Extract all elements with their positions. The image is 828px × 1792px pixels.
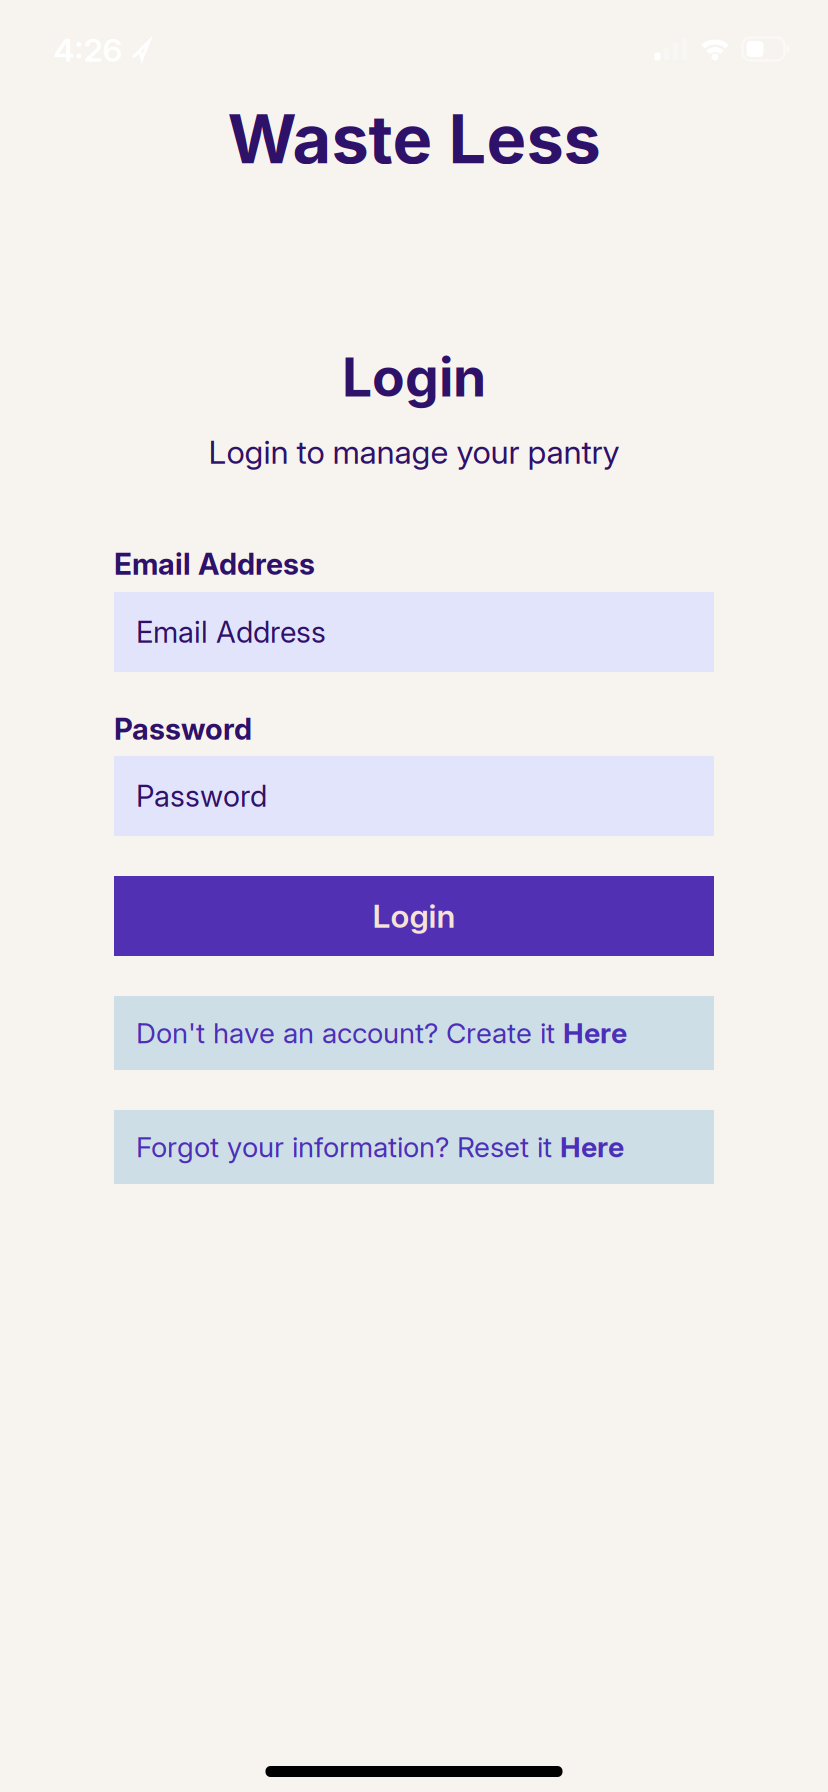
staticText: Forgot your information? Reset it Here (136, 1130, 624, 1163)
button[interactable]: Password (114, 756, 714, 836)
staticText: Login (342, 345, 486, 408)
button[interactable]: Forgot your information? Reset it Here (114, 1110, 714, 1184)
button[interactable]: Login (114, 876, 714, 956)
staticText: Login (372, 897, 455, 935)
button[interactable]: Don't have an account? Create it Here (114, 996, 714, 1070)
staticText: Don't have an account? Create it Here (136, 1016, 627, 1049)
staticText: Email Address (114, 547, 315, 581)
staticText: Login to manage your pantry (208, 433, 619, 471)
staticText: Waste Less (227, 100, 600, 178)
staticText: Password (114, 712, 252, 746)
button[interactable]: Email Address (114, 592, 714, 672)
staticText: Password (136, 779, 267, 813)
staticText: 4:26 (53, 31, 122, 69)
staticText: Email Address (136, 615, 326, 649)
